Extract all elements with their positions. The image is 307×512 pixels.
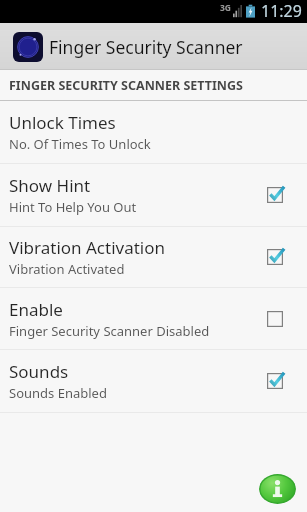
button[interactable]: Toggle (262, 306, 288, 332)
staticText: Show Hint (9, 174, 91, 197)
button[interactable]: Toggle (262, 244, 288, 270)
staticText: Sounds Enabled (9, 384, 107, 402)
button[interactable]: Show Hint (0, 164, 307, 226)
staticText: Finger Security Scanner Disabled (9, 322, 210, 340)
staticText: Finger Security Scanner (49, 35, 243, 59)
staticText: Enable (9, 298, 63, 321)
staticText: No. Of Times To Unlock (9, 135, 151, 153)
button[interactable]: Vibration Activation (0, 227, 307, 287)
button[interactable]: Unlock Times (0, 101, 307, 163)
button[interactable]: Enable (0, 288, 307, 349)
button[interactable]: Toggle (262, 368, 288, 394)
staticText: Unlock Times (9, 111, 116, 134)
staticText: 3G (220, 2, 232, 14)
button[interactable]: Sounds (0, 350, 307, 412)
button[interactable]: Toggle (262, 182, 288, 208)
staticText: Sounds (9, 360, 69, 383)
staticText: Vibration Activated (9, 260, 125, 278)
staticText: 11:29 (261, 0, 302, 22)
button[interactable]: Info (259, 474, 296, 504)
staticText: FINGER SECURITY SCANNER SETTINGS (9, 77, 243, 94)
staticText: Hint To Help You Out (9, 198, 137, 216)
staticText: Vibration Activation (9, 236, 166, 259)
